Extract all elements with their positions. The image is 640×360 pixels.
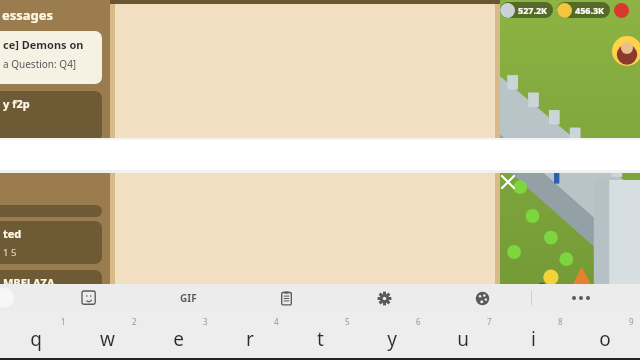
staticText: q xyxy=(30,326,42,352)
staticText: ce] Demons on Earth xyxy=(3,37,99,52)
button[interactable]: y xyxy=(356,312,427,360)
button[interactable]: Sticker xyxy=(40,284,139,312)
staticText: Br help altar xyxy=(3,295,59,307)
staticText: w xyxy=(100,326,115,352)
staticText: e xyxy=(173,326,184,352)
button[interactable] xyxy=(0,140,640,172)
button[interactable]: e xyxy=(143,312,214,360)
button[interactable]: i xyxy=(498,312,569,360)
staticText: i xyxy=(531,326,536,352)
button[interactable]: 456.3K xyxy=(557,2,610,18)
staticText: y f2p xyxy=(3,96,30,111)
button[interactable]: o xyxy=(569,312,640,360)
button[interactable]: Close xyxy=(498,172,518,192)
button[interactable]: Theme xyxy=(433,284,531,312)
button[interactable]: Clipboard xyxy=(237,284,335,312)
staticText: ted xyxy=(3,226,22,241)
staticText: a Question: Q4] xyxy=(3,57,77,71)
button[interactable]: Settings xyxy=(335,284,433,312)
staticText: Logic Bank F2P joined the group chat xyxy=(231,286,380,298)
staticText: 527.2K xyxy=(518,4,548,16)
button[interactable]: Shared a Question: Q4 xyxy=(150,328,298,352)
staticText: u xyxy=(457,326,469,352)
staticText: o xyxy=(599,326,611,352)
staticText: y xyxy=(387,326,397,352)
staticText: 5 xyxy=(345,316,350,327)
button[interactable]: Search xyxy=(0,288,14,308)
staticText: MBELAZA xyxy=(3,275,55,290)
button[interactable]: Elias Bang avatar xyxy=(122,309,143,330)
staticText: t xyxy=(317,326,324,352)
button[interactable]: u xyxy=(427,312,498,360)
staticText: r xyxy=(246,326,254,352)
staticText: essages xyxy=(2,6,54,24)
button[interactable]: y f2p xyxy=(0,91,102,141)
staticText: 3 xyxy=(203,316,208,327)
button[interactable]: r xyxy=(214,312,285,360)
button[interactable]: ted xyxy=(0,221,102,264)
staticText: GIF xyxy=(180,291,197,305)
button[interactable]: GIF xyxy=(139,284,237,312)
button[interactable]: MBELAZA xyxy=(0,270,102,312)
button[interactable]: Gems xyxy=(614,3,629,18)
staticText: 456.3K xyxy=(575,4,605,16)
staticText: 1 5 xyxy=(3,246,17,259)
button[interactable]: t xyxy=(285,312,356,360)
staticText: 2 xyxy=(132,316,137,327)
button[interactable]: 527.2K xyxy=(500,2,553,18)
staticText: 8 xyxy=(558,316,563,327)
button[interactable]: More xyxy=(532,284,630,312)
staticText: 4 xyxy=(274,316,279,327)
button[interactable] xyxy=(0,205,102,217)
staticText: 7 xyxy=(487,316,492,327)
staticText: 9 xyxy=(629,316,634,327)
staticText: 6 xyxy=(416,316,421,327)
button[interactable]: q xyxy=(0,312,72,360)
button[interactable]: w xyxy=(72,312,143,360)
staticText: Shared a Question: Q4 xyxy=(159,333,270,347)
button[interactable]: ce] Demons on Earth xyxy=(0,31,102,84)
staticText: 1 xyxy=(61,316,66,327)
